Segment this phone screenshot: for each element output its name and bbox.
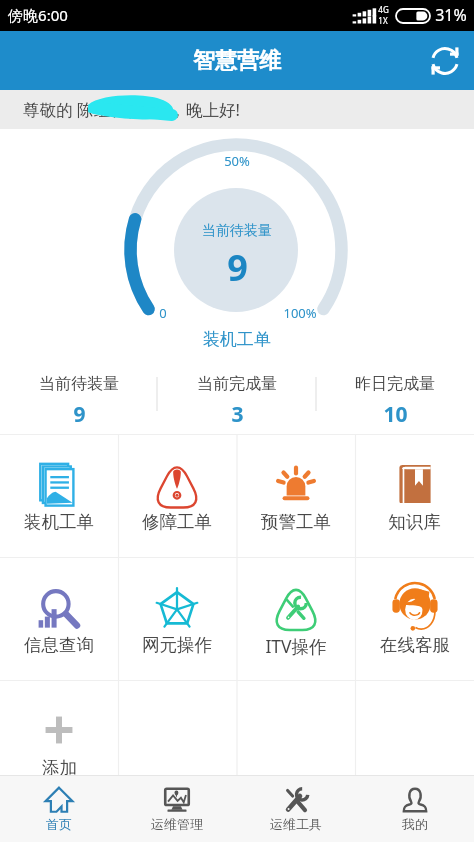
staticText: ITV操作 xyxy=(265,634,327,658)
staticText: 3 xyxy=(231,400,244,429)
staticText: 9 xyxy=(73,400,86,429)
button[interactable]: 在线客服 xyxy=(355,557,474,680)
staticText: 10 xyxy=(383,400,408,429)
staticText: 当前待装量 xyxy=(39,374,119,394)
button[interactable]: 昨日完成量 xyxy=(316,364,474,434)
staticText: 预警工单 xyxy=(261,511,331,533)
button[interactable]: 信息查询 xyxy=(0,557,118,680)
button[interactable]: 装机工单 xyxy=(0,434,118,557)
staticText: 9 xyxy=(227,243,248,292)
button[interactable]: Refresh xyxy=(425,41,465,81)
button[interactable]: 运维工具 xyxy=(236,775,355,842)
button[interactable]: 当前待装量 xyxy=(0,364,158,434)
staticText: 首页 xyxy=(46,816,72,832)
button[interactable]: 添加 xyxy=(0,680,118,775)
staticText: 4G xyxy=(378,4,389,15)
staticText: 运维工具 xyxy=(270,816,322,832)
staticText: 装机工单 xyxy=(24,511,94,533)
staticText: 当前待装量 xyxy=(202,222,272,240)
button[interactable]: 我的 xyxy=(355,775,474,842)
staticText: 信息查询 xyxy=(24,634,94,656)
staticText: 31% xyxy=(435,4,467,26)
staticText: 50% xyxy=(224,152,250,170)
button[interactable]: 修障工单 xyxy=(118,434,236,557)
staticText: 添加 xyxy=(42,757,77,779)
staticText: 尊敬的 陈组长(临河)，晚上好! xyxy=(23,98,240,121)
button[interactable]: 首页 xyxy=(0,775,118,842)
staticText: 傍晚6:00 xyxy=(8,5,68,25)
button[interactable]: ITV操作 xyxy=(236,557,355,680)
staticText: 0 xyxy=(159,304,167,322)
button[interactable]: 网元操作 xyxy=(118,557,236,680)
staticText: 在线客服 xyxy=(380,634,450,656)
staticText: 我的 xyxy=(402,816,428,832)
staticText: 智慧营维 xyxy=(193,47,281,75)
staticText: 网元操作 xyxy=(142,634,212,656)
button[interactable]: 当前完成量 xyxy=(158,364,316,434)
staticText: 装机工单 xyxy=(203,329,271,350)
staticText: 知识库 xyxy=(388,511,441,533)
staticText: 100% xyxy=(283,304,317,322)
staticText: 修障工单 xyxy=(142,511,212,533)
staticText: 当前完成量 xyxy=(197,374,277,394)
staticText: 昨日完成量 xyxy=(355,374,435,394)
staticText: 1X xyxy=(378,15,388,26)
staticText: 运维管理 xyxy=(151,816,203,832)
button[interactable]: 知识库 xyxy=(355,434,474,557)
button[interactable]: 运维管理 xyxy=(118,775,236,842)
button[interactable]: 预警工单 xyxy=(236,434,355,557)
